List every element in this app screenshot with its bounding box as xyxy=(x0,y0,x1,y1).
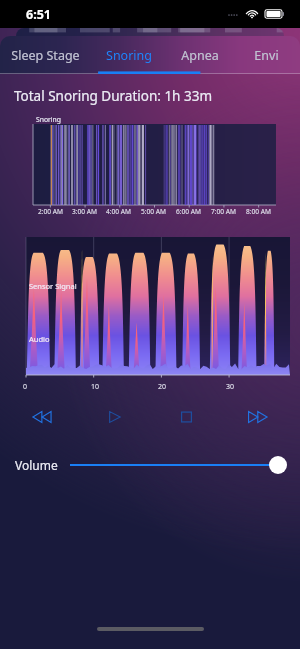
staticText: 20 xyxy=(158,382,167,392)
staticText: 10 xyxy=(91,382,100,392)
staticText: Snoring xyxy=(36,115,61,124)
staticText: 6:51 xyxy=(26,6,51,23)
staticText: Apnea xyxy=(181,47,219,64)
staticText: Audio xyxy=(29,334,50,344)
staticText: 6:00 AM xyxy=(176,207,201,216)
button[interactable]: Envi xyxy=(232,36,300,74)
button[interactable]: Stop xyxy=(150,400,222,434)
staticText: Sensor Signal xyxy=(29,281,77,291)
staticText: Envi xyxy=(254,47,279,64)
staticText: 8:00 AM xyxy=(246,207,271,216)
button[interactable]: Fast forward xyxy=(222,400,294,434)
staticText: Sleep Stage xyxy=(11,47,80,64)
staticText: Volume xyxy=(15,457,58,473)
button[interactable] xyxy=(70,450,287,480)
button[interactable]: Sleep Stage xyxy=(0,36,91,74)
button[interactable]: Play xyxy=(78,400,150,434)
staticText: 30 xyxy=(226,382,235,392)
staticText: 5:00 AM xyxy=(141,207,166,216)
staticText: 4:00 AM xyxy=(106,207,131,216)
button[interactable]: Snoring xyxy=(91,36,167,74)
staticText: Snoring xyxy=(106,47,152,64)
staticText: Total Snoring Duration: 1h 33m xyxy=(14,87,213,105)
staticText: 7:00 AM xyxy=(211,207,236,216)
staticText: 2:00 AM xyxy=(38,207,63,216)
button[interactable]: Apnea xyxy=(167,36,232,74)
staticText: 3:00 AM xyxy=(72,207,97,216)
staticText: 0 xyxy=(23,382,28,392)
button[interactable]: Rewind xyxy=(6,400,78,434)
